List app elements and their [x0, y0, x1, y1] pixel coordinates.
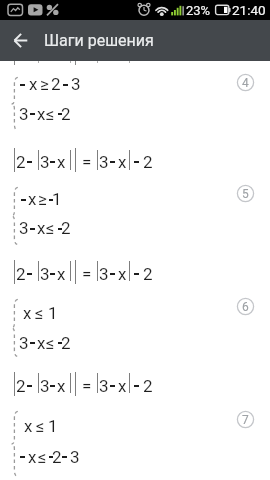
staticText: 2: [52, 447, 62, 467]
staticText: 4: [242, 76, 249, 90]
staticText: ≤: [46, 333, 55, 353]
staticText: 2: [61, 218, 71, 238]
staticText: x: [118, 152, 127, 172]
staticText: ≤: [38, 447, 47, 467]
staticText: 1: [48, 416, 58, 436]
staticText: ≤: [35, 303, 44, 323]
staticText: ≥: [40, 74, 49, 94]
staticText: 5: [242, 187, 249, 201]
staticText: 3: [99, 152, 109, 172]
staticText: 2: [143, 152, 153, 172]
staticText: 3: [99, 264, 109, 284]
staticText: 21:40: [232, 2, 266, 18]
staticText: x: [29, 74, 38, 94]
staticText: 3: [40, 376, 50, 396]
staticText: x: [37, 218, 46, 238]
staticText: x: [37, 333, 46, 353]
staticText: 7: [242, 413, 249, 427]
staticText: x: [57, 152, 66, 172]
staticText: ≤: [46, 218, 55, 238]
staticText: ≤: [36, 416, 45, 436]
staticText: 23%: [186, 3, 211, 18]
button[interactable]: [6, 27, 36, 55]
staticText: x: [118, 376, 127, 396]
staticText: 3: [40, 264, 50, 284]
staticText: 6: [242, 300, 249, 314]
staticText: 2: [16, 376, 26, 396]
staticText: =: [82, 264, 92, 284]
staticText: x: [28, 447, 37, 467]
staticText: 2: [16, 264, 26, 284]
staticText: 3: [19, 218, 29, 238]
staticText: x: [23, 303, 32, 323]
staticText: x: [37, 104, 46, 124]
staticText: 3: [19, 333, 29, 353]
staticText: Шаги решения: [44, 31, 154, 50]
staticText: x: [118, 264, 127, 284]
staticText: 3: [70, 447, 80, 467]
staticText: x: [57, 376, 66, 396]
staticText: ≥: [38, 189, 47, 209]
staticText: 2: [51, 74, 61, 94]
staticText: 3: [99, 376, 109, 396]
staticText: x: [57, 264, 66, 284]
staticText: x: [28, 189, 37, 209]
staticText: ≤: [46, 104, 55, 124]
staticText: 3: [19, 104, 29, 124]
staticText: 1: [52, 189, 62, 209]
staticText: 2: [61, 104, 71, 124]
staticText: 3: [71, 74, 81, 94]
staticText: =: [82, 152, 92, 172]
staticText: 2: [61, 333, 71, 353]
staticText: 2: [143, 264, 153, 284]
staticText: 2: [16, 152, 26, 172]
staticText: 2: [143, 376, 153, 396]
staticText: =: [82, 376, 92, 396]
staticText: 3: [40, 152, 50, 172]
staticText: 1: [48, 303, 58, 323]
staticText: x: [24, 416, 33, 436]
